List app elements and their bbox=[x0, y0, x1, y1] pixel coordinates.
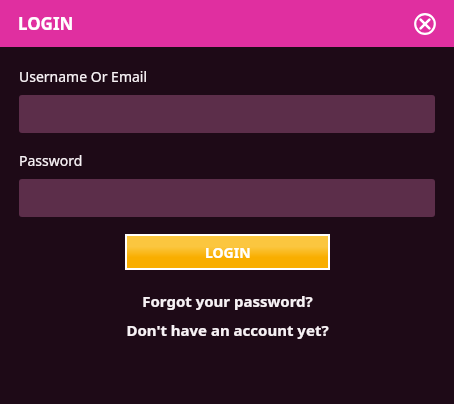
button[interactable]: Don't have an account yet? bbox=[0, 317, 454, 343]
button[interactable]: Forgot your password? bbox=[0, 288, 454, 314]
staticText: Don't have an account yet? bbox=[126, 320, 329, 340]
staticText: Username Or Email bbox=[19, 67, 148, 86]
staticText: LOGIN bbox=[18, 12, 74, 35]
staticText: Forgot your password? bbox=[142, 291, 313, 311]
button[interactable]: Close bbox=[408, 7, 442, 41]
button[interactable]: LOGIN bbox=[127, 236, 328, 268]
staticText: Password bbox=[19, 151, 83, 170]
staticText: LOGIN bbox=[205, 243, 251, 262]
